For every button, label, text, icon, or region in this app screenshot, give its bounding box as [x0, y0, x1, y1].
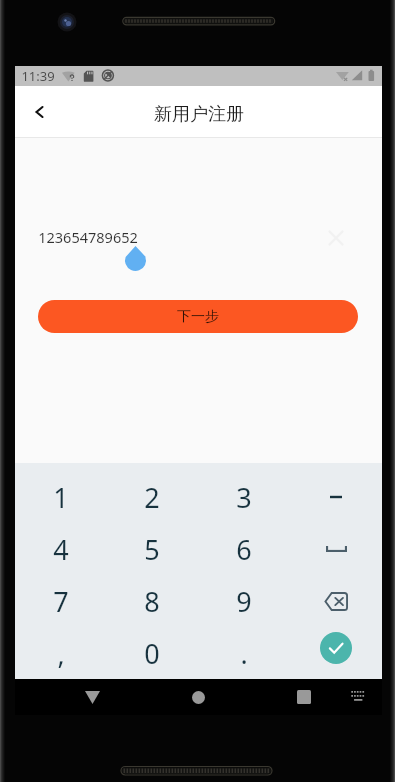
- button[interactable]: 1: [15, 471, 106, 523]
- button[interactable]: Home: [180, 679, 216, 715]
- staticText: 7: [53, 583, 69, 620]
- staticText: 11:39: [21, 67, 55, 85]
- button[interactable]: Done: [290, 627, 382, 679]
- staticText: .: [240, 635, 248, 672]
- staticText: 3: [236, 479, 252, 516]
- staticText: 8: [144, 583, 160, 620]
- button[interactable]: Space: [290, 523, 382, 575]
- button[interactable]: 6: [198, 523, 290, 575]
- button[interactable]: 7: [15, 575, 106, 627]
- button[interactable]: 0: [106, 627, 198, 679]
- button[interactable]: Recents: [286, 679, 322, 715]
- staticText: 1: [53, 479, 69, 516]
- staticText: 2: [144, 479, 160, 516]
- staticText: ,: [57, 635, 65, 672]
- staticText: 0: [144, 635, 160, 672]
- staticText: 4: [53, 531, 69, 568]
- button[interactable]: ,: [15, 627, 106, 679]
- button[interactable]: Minus: [290, 471, 382, 523]
- staticText: 123654789652: [38, 227, 138, 247]
- button[interactable]: Back: [15, 89, 61, 135]
- staticText: 6: [236, 531, 252, 568]
- staticText: 5: [144, 531, 160, 568]
- button[interactable]: .: [198, 627, 290, 679]
- staticText: 新用户注册: [154, 103, 244, 126]
- button[interactable]: 8: [106, 575, 198, 627]
- button[interactable]: 5: [106, 523, 198, 575]
- staticText: 9: [236, 583, 252, 620]
- button[interactable]: 2: [106, 471, 198, 523]
- button[interactable]: 3: [198, 471, 290, 523]
- button[interactable]: 9: [198, 575, 290, 627]
- button[interactable]: Keyboard: [340, 679, 376, 715]
- button[interactable]: Back: [74, 679, 110, 715]
- staticText: 下一步: [177, 308, 219, 326]
- button[interactable]: 4: [15, 523, 106, 575]
- button[interactable]: 下一步: [38, 300, 358, 333]
- button[interactable]: Backspace: [290, 575, 382, 627]
